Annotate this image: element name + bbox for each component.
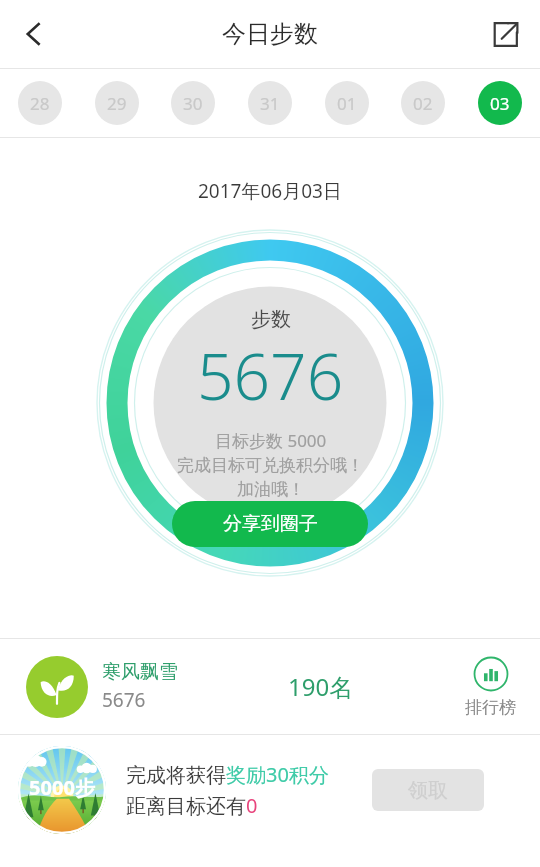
button[interactable]: 排行榜: [465, 656, 516, 718]
staticText: 目标步数 5000: [215, 429, 327, 452]
staticText: 190名: [288, 670, 354, 703]
staticText: 5676: [197, 332, 344, 419]
staticText: 领取: [408, 778, 448, 803]
staticText: 03: [490, 92, 510, 115]
staticText: 5000步: [29, 774, 95, 801]
staticText: 31: [260, 92, 280, 115]
button[interactable]: 29: [95, 81, 139, 125]
staticText: 排行榜: [465, 697, 516, 718]
button[interactable]: 01: [325, 81, 369, 125]
staticText: 完成将获得奖励30积分: [126, 761, 329, 788]
button[interactable]: 领取: [372, 769, 484, 811]
staticText: 01: [337, 92, 357, 115]
button[interactable]: 分享到圈子: [172, 501, 368, 547]
button[interactable]: 31: [248, 81, 292, 125]
button[interactable]: 30: [171, 81, 215, 125]
staticText: 02: [413, 92, 433, 115]
staticText: 加油哦！: [237, 479, 305, 500]
staticText: 2017年06月03日: [198, 178, 342, 204]
staticText: 5676: [102, 687, 146, 713]
staticText: 寒风飘雪: [102, 660, 178, 684]
staticText: 30: [183, 92, 203, 115]
button[interactable]: Back: [8, 8, 60, 60]
staticText: 完成目标可兑换积分哦！: [177, 455, 364, 476]
button[interactable]: Share: [480, 9, 530, 59]
staticText: 分享到圈子: [223, 512, 318, 536]
staticText: 今日步数: [222, 19, 318, 49]
button[interactable]: 02: [401, 81, 445, 125]
staticText: 步数: [251, 307, 291, 332]
button[interactable]: 28: [18, 81, 62, 125]
button[interactable]: 03: [478, 81, 522, 125]
staticText: 29: [107, 92, 127, 115]
button[interactable]: 寒风飘雪: [0, 639, 540, 734]
staticText: 距离目标还有0: [126, 792, 258, 819]
staticText: 28: [30, 92, 50, 115]
